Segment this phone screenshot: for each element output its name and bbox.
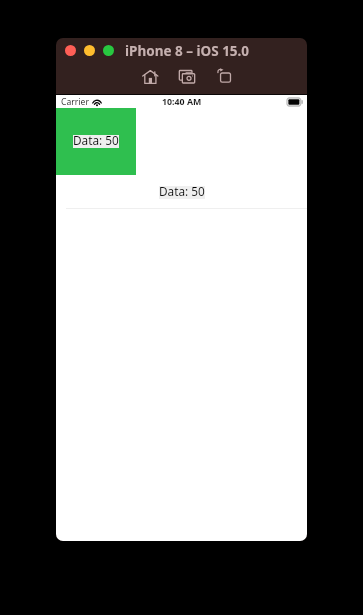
button[interactable]: Zoom window xyxy=(103,45,114,56)
button[interactable]: Data: 50 xyxy=(73,135,119,148)
staticText: Data: 50 xyxy=(73,135,119,148)
staticText: Data: 50 xyxy=(159,186,205,199)
staticText: 10:40 AM xyxy=(162,96,202,108)
staticText: iPhone 8 – iOS 15.0 xyxy=(125,42,250,60)
button[interactable]: Close window xyxy=(65,45,76,56)
button[interactable]: Data: 50 xyxy=(159,186,205,199)
button[interactable]: Screenshot xyxy=(176,66,198,88)
button[interactable]: Rotate xyxy=(213,66,235,88)
button[interactable]: Minimize window xyxy=(84,45,95,56)
button[interactable]: Data: 50 xyxy=(56,108,136,175)
button[interactable]: Home xyxy=(139,66,161,88)
staticText: Carrier xyxy=(61,96,89,108)
